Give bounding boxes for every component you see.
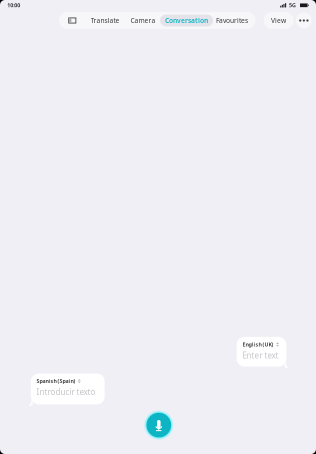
staticText: Enter text [243, 350, 279, 361]
button[interactable]: More [296, 13, 312, 28]
staticText: Translate [91, 16, 120, 25]
button[interactable]: Record [142, 409, 173, 440]
button[interactable]: Camera [131, 12, 156, 29]
staticText: Camera [131, 16, 156, 25]
staticText: 10:00 [7, 2, 20, 9]
button[interactable]: Translate [91, 12, 120, 29]
button[interactable]: Spanish (Spain) [27, 373, 103, 405]
staticText: Introducir texto [36, 387, 95, 397]
staticText: Conversation [165, 16, 208, 25]
staticText: English (UK) [243, 341, 274, 348]
button[interactable]: Favourites [216, 12, 248, 29]
button[interactable]: English (UK) [235, 336, 288, 367]
staticText: 5G [289, 2, 296, 9]
button[interactable]: Show Sidebar [68, 17, 76, 23]
button[interactable]: Conversation [160, 14, 213, 26]
staticText: View [271, 16, 286, 25]
staticText: Favourites [216, 16, 248, 25]
staticText: Spanish (Spain) [36, 377, 75, 385]
button[interactable]: View [264, 12, 293, 29]
